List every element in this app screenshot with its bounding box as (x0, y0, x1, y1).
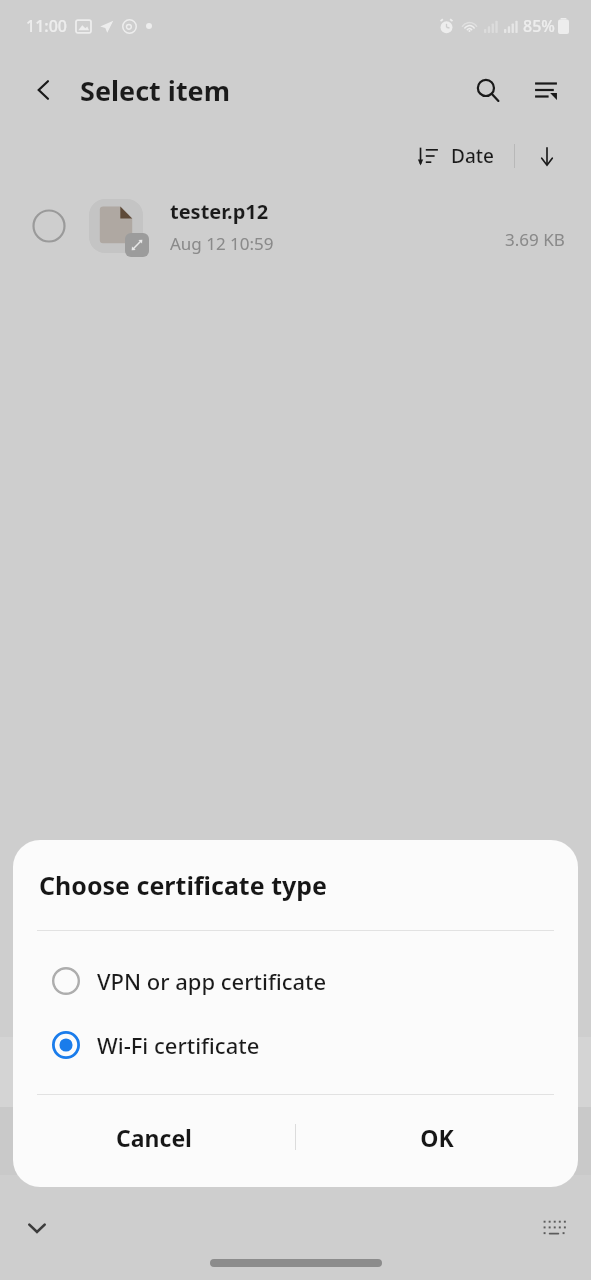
button[interactable]: 2 (70, 1116, 121, 1166)
button[interactable]: Wi-Fi certificate (13, 1013, 578, 1077)
staticText: 3 (145, 1124, 160, 1158)
button[interactable]: More (521, 1049, 567, 1095)
button[interactable]: tester.p12 (0, 184, 591, 268)
button[interactable]: Search (398, 1049, 444, 1095)
staticText: OK (420, 1122, 454, 1153)
staticText: 85% (523, 15, 555, 37)
button[interactable]: Voice input (152, 1049, 198, 1095)
staticText: Select item (80, 72, 231, 109)
staticText: 3.69 KB (505, 228, 565, 251)
button[interactable]: Emoji (30, 1049, 76, 1095)
staticText: Aug 12 10:59 (170, 232, 274, 255)
staticText: tester.p12 (170, 198, 269, 225)
staticText: 11:00 (26, 15, 67, 37)
staticText: Choose certificate type (39, 868, 327, 902)
button[interactable]: Keyboard settings (275, 1049, 321, 1095)
staticText: Wi-Fi certificate (97, 1030, 260, 1060)
button[interactable]: OK (296, 1095, 578, 1179)
staticText: Cancel (116, 1122, 192, 1153)
button[interactable]: Sort direction (529, 138, 565, 174)
button[interactable]: 8 (412, 1116, 463, 1166)
staticText: Date (451, 143, 494, 169)
button[interactable]: VPN or app certificate (13, 949, 578, 1013)
button[interactable]: More options (523, 67, 569, 113)
button[interactable]: Search (465, 67, 511, 113)
button[interactable]: Back (24, 70, 64, 110)
staticText: VPN or app certificate (97, 966, 327, 996)
button[interactable]: 3 (127, 1116, 178, 1166)
button[interactable]: Keyboard (531, 1205, 577, 1251)
button[interactable]: 4 (184, 1116, 235, 1166)
button[interactable]: Date (411, 137, 500, 175)
button[interactable]: Cancel (13, 1095, 295, 1179)
button[interactable]: Hide keyboard (14, 1205, 60, 1251)
staticText: 8 (430, 1124, 445, 1158)
